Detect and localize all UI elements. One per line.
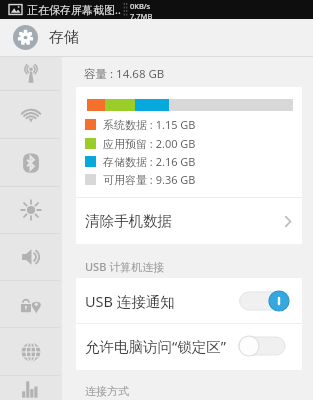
staticText: 7.7MB <box>130 11 153 19</box>
button[interactable]: Privacy <box>0 281 62 328</box>
staticText: 系统数据 : 1.15 GB <box>103 117 196 131</box>
button[interactable]: Settings <box>13 25 38 50</box>
button[interactable]: Language <box>0 328 62 375</box>
staticText: 存储数据 : 2.16 GB <box>103 154 196 168</box>
button[interactable]: Bluetooth <box>0 139 62 186</box>
other: Open <box>284 215 292 228</box>
button[interactable]: Data usage <box>0 376 62 400</box>
staticText: 应用预留 : 2.00 GB <box>103 136 196 150</box>
staticText: 连接方式 <box>85 384 129 398</box>
staticText: USB 计算机连接 <box>85 259 165 274</box>
staticText: 允许电脑访问“锁定区” <box>85 336 226 356</box>
staticText: 0KB/s <box>130 1 151 11</box>
button[interactable]: Display <box>0 187 62 233</box>
staticText: USB 连接通知 <box>85 291 175 311</box>
staticText: 容量 : 14.68 GB <box>84 66 165 82</box>
button[interactable]: 清除手机数据 <box>76 198 302 244</box>
button[interactable]: Sound <box>0 234 62 280</box>
button[interactable]: USB 连接通知 <box>76 278 302 323</box>
staticText: 存储 <box>49 28 79 47</box>
button[interactable]: Wi-Fi <box>0 91 62 138</box>
button[interactable]: Mobile network <box>0 57 62 90</box>
staticText: 清除手机数据 <box>85 212 172 230</box>
button[interactable]: 允许电脑访问“锁定区” <box>76 326 302 366</box>
staticText: 可用容量 : 9.36 GB <box>103 172 196 186</box>
staticText: 正在保存屏幕截图.. <box>27 2 121 17</box>
